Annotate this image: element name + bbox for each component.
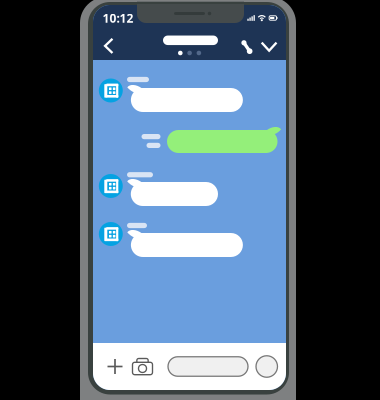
button[interactable]: Hide [256,33,282,61]
button[interactable]: Add attachment [102,349,128,383]
button[interactable]: Camera [128,349,157,383]
button[interactable]: Call [234,33,260,61]
button[interactable]: Back [96,31,122,61]
button[interactable]: Record audio [256,356,277,377]
button[interactable] [168,357,248,376]
staticText: 10:12 [102,10,133,26]
